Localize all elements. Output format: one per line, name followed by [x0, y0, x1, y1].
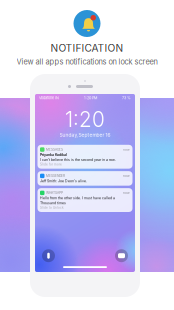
staticText: now	[123, 191, 130, 195]
staticText: Hello from the other side. I must have c…	[40, 196, 115, 200]
staticText: NOTIFICATION	[50, 42, 123, 54]
staticText: Priyanka Kodikal	[40, 153, 67, 157]
staticText: 73 %	[122, 96, 131, 100]
staticText: MESSAGES	[46, 148, 63, 151]
staticText: now	[123, 148, 130, 151]
staticText: WHATSAPP	[46, 191, 63, 195]
staticText: View all apps notifications on lock scre…	[16, 57, 157, 66]
staticText: Thousand times	[40, 201, 66, 205]
staticText: 1:20 PM	[84, 96, 97, 100]
staticText: now	[123, 174, 130, 178]
staticText: Slide for more	[40, 163, 62, 166]
staticText: Jeff Smith: Joe Deon's alive.	[40, 179, 87, 183]
staticText: MESSENGER	[46, 174, 65, 178]
button[interactable]: Camera	[115, 249, 128, 262]
staticText: Slide to Unlock	[40, 206, 64, 209]
staticText: Vodafone IN	[39, 96, 59, 100]
staticText: I can't believe this is the second year …	[40, 158, 116, 162]
staticText: Sunday, September 16	[59, 132, 110, 138]
button[interactable]: Flashlight	[42, 249, 55, 262]
staticText: 1:20	[65, 107, 105, 132]
